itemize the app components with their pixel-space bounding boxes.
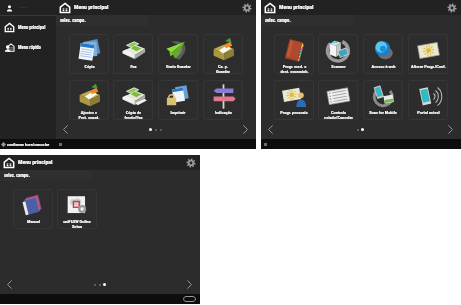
button[interactable]: Fax: [113, 34, 153, 74]
staticText: selec. campo.: [4, 173, 30, 178]
staticText: Menu principal: [279, 4, 314, 11]
staticText: Alterar Progr./Conf.: [411, 64, 446, 69]
button[interactable]: Progr. med. e dest. encaminh.: [274, 34, 314, 74]
button[interactable]: Imprimir: [158, 80, 198, 120]
staticText: Menu rápido: [18, 45, 41, 50]
button[interactable]: Definicoes: [242, 3, 252, 13]
staticText: Menu principal: [74, 4, 109, 11]
staticText: selec. campo.: [265, 18, 291, 23]
button[interactable]: Cópia: [69, 34, 109, 74]
button[interactable]: Definicoes: [447, 3, 457, 13]
staticText: Menu principal: [18, 159, 53, 166]
button[interactable]: Indicação: [203, 80, 243, 120]
staticText: Cx. p. Guardar: [216, 64, 230, 74]
staticText: ------: [19, 6, 27, 10]
button[interactable]: Cópia de frente/Fax: [113, 80, 153, 120]
button[interactable]: Envio Guardar: [158, 34, 198, 74]
button[interactable]: Progr. pessoais: [274, 80, 314, 120]
staticText: Portal móvel: [417, 110, 440, 115]
staticText: confirmar hora/cancelar: [7, 142, 50, 147]
button[interactable]: ------: [0, 1, 56, 15]
staticText: Indicação: [215, 110, 232, 115]
staticText: Cópia: [84, 64, 95, 69]
button[interactable]: Portal móvel: [408, 80, 448, 120]
staticText: Menu principal: [18, 25, 46, 30]
button[interactable]: Seguinte: [179, 275, 200, 294]
button[interactable]: Scan for Mobile: [363, 80, 403, 120]
button[interactable]: Seguinte: [235, 120, 256, 139]
button[interactable]: Anterior: [0, 275, 19, 294]
staticText: Fax: [130, 64, 137, 69]
staticText: Ajustes e Prot. guard.: [78, 110, 100, 120]
staticText: Progr. med. e dest. encaminh.: [280, 64, 309, 74]
button[interactable]: Menu principal: [0, 17, 56, 37]
staticText: selec. campo.: [60, 18, 86, 23]
button[interactable]: Scanner: [318, 34, 358, 74]
staticText: Cópia de frente/Fax: [124, 110, 143, 120]
staticText: Scanner: [331, 64, 346, 69]
staticText: uniFLOW Online Setup: [63, 219, 91, 229]
button[interactable]: Menu principal: [56, 0, 256, 15]
button[interactable]: Ajustes e Prot. guard.: [69, 80, 109, 120]
button[interactable]: Manual: [13, 189, 53, 229]
staticText: Controlo estado/Cancelar: [324, 110, 353, 120]
staticText: Imprimir: [170, 110, 186, 115]
staticText: Envio Guardar: [166, 64, 191, 69]
button[interactable]: Anterior: [56, 120, 75, 139]
button[interactable]: Energia: [183, 296, 196, 302]
button[interactable]: uniFLOW Online Setup: [57, 189, 97, 229]
button[interactable]: Menu principal: [0, 155, 200, 170]
button[interactable]: Menu principal: [261, 0, 461, 15]
button[interactable]: Definicoes: [186, 158, 196, 168]
staticText: Progr. pessoais: [280, 110, 308, 115]
staticText: Acesso à web: [371, 64, 396, 69]
button[interactable]: Anterior: [261, 120, 280, 139]
button[interactable]: Alterar Progr./Conf.: [408, 34, 448, 74]
staticText: Scan for Mobile: [369, 110, 397, 115]
button[interactable]: Cx. p. Guardar: [203, 34, 243, 74]
button[interactable]: Seguinte: [440, 120, 461, 139]
staticText: Manual: [27, 219, 40, 224]
button[interactable]: Acesso à web: [363, 34, 403, 74]
button[interactable]: Menu rápido: [0, 37, 56, 57]
button[interactable]: Controlo estado/Cancelar: [318, 80, 358, 120]
